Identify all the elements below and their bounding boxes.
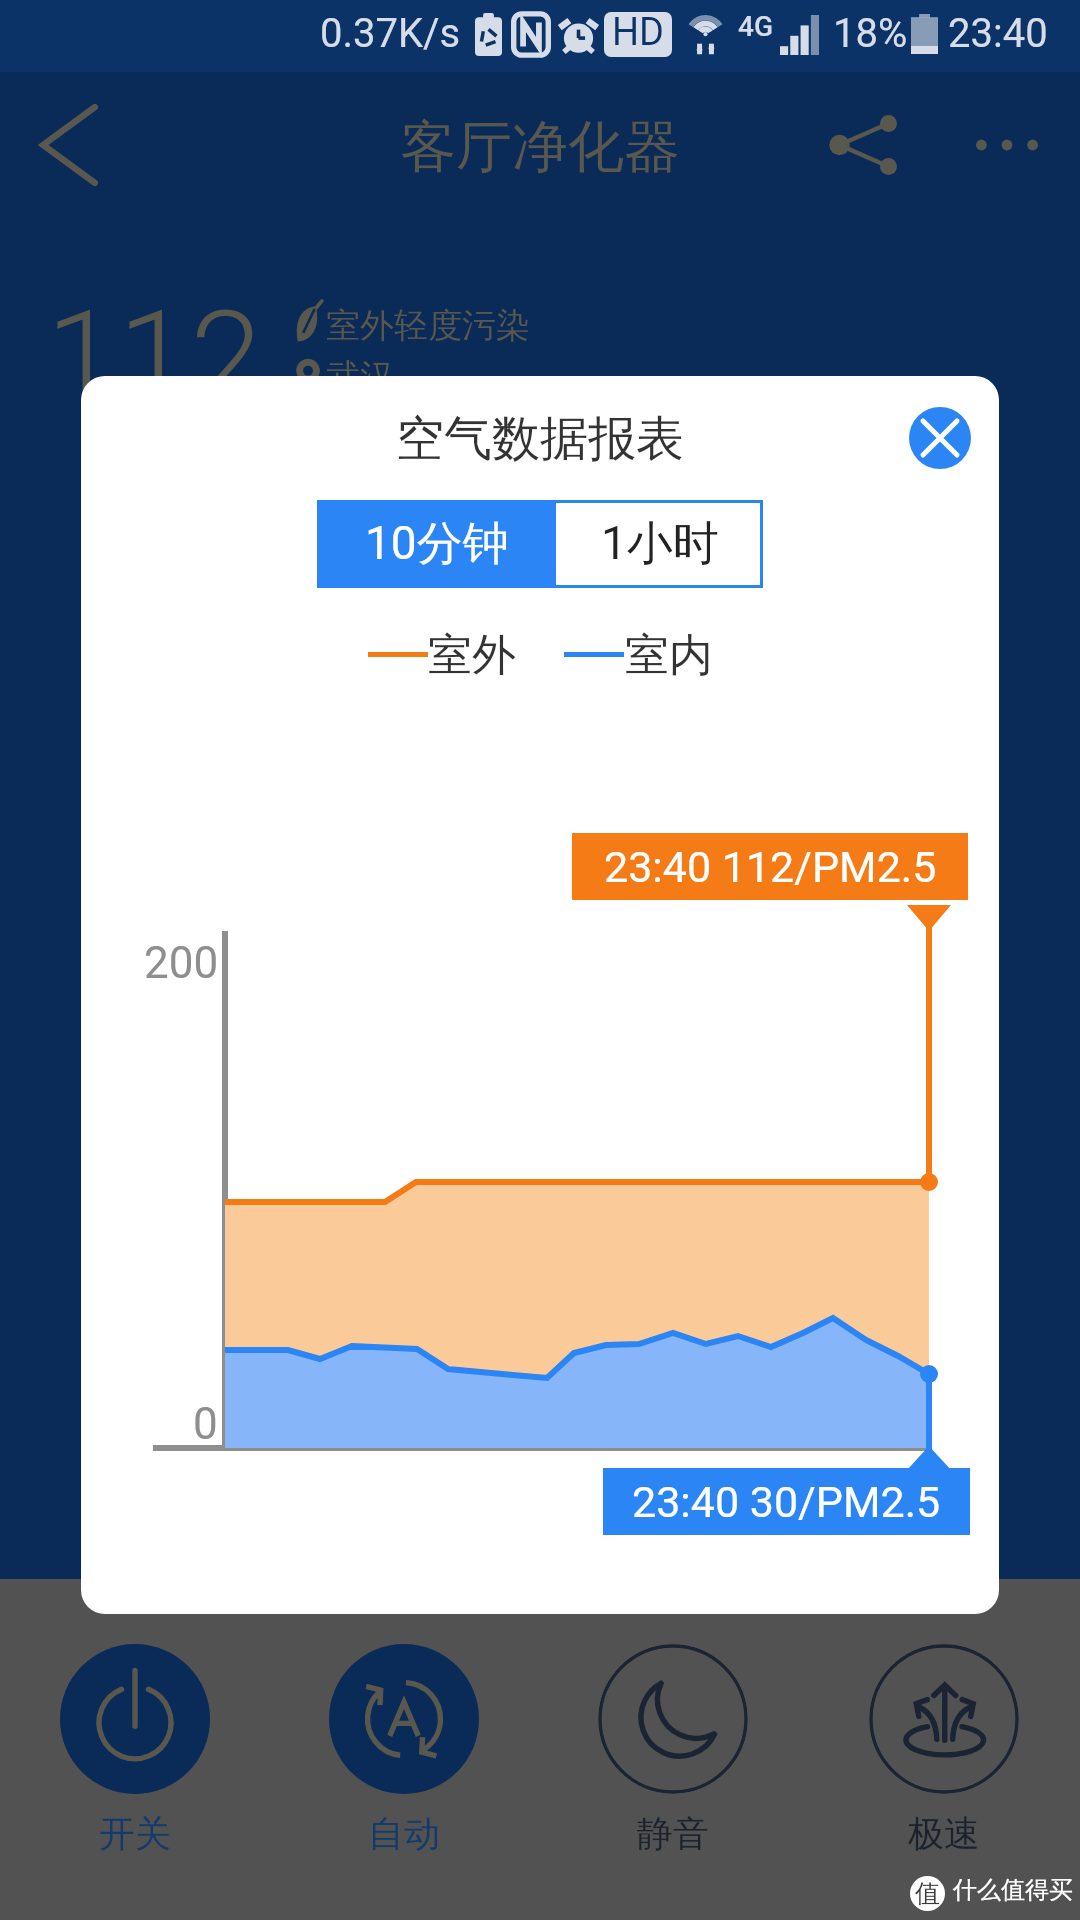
staticText: HD — [612, 12, 665, 55]
button[interactable]: 开关 — [60, 1644, 210, 1856]
staticText: 静音 — [637, 1811, 709, 1856]
staticText: 23:40 — [948, 10, 1048, 57]
staticText: 空气数据报表 — [396, 409, 684, 469]
button[interactable]: Close — [909, 407, 971, 469]
staticText: 值 — [915, 1878, 940, 1909]
staticText: 自动 — [368, 1811, 440, 1856]
button[interactable]: 极速 — [869, 1644, 1019, 1856]
button[interactable]: Back — [6, 80, 132, 210]
staticText: 4G — [738, 10, 773, 43]
staticText: 200 — [144, 937, 219, 989]
button[interactable]: 1小时 — [556, 500, 763, 588]
staticText: 0 — [193, 1398, 218, 1450]
staticText: 室外轻度污染 — [326, 304, 530, 347]
staticText: 0.37K/s — [320, 10, 461, 57]
staticText: 18% — [833, 10, 908, 57]
staticText: 10分钟 — [365, 515, 509, 573]
button[interactable]: More options — [947, 85, 1067, 205]
staticText: 室内 — [625, 628, 713, 683]
staticText: 室外 — [428, 628, 516, 683]
staticText: 客厅净化器 — [400, 112, 680, 183]
button[interactable]: 自动 — [329, 1644, 479, 1856]
button[interactable]: 10分钟 — [317, 500, 556, 588]
button[interactable]: 静音 — [598, 1644, 748, 1856]
staticText: 23:40 112/PM2.5 — [604, 842, 937, 892]
staticText: 23:40 30/PM2.5 — [632, 1477, 941, 1527]
staticText: 1小时 — [601, 515, 719, 573]
staticText: 什么值得买 — [953, 1875, 1073, 1905]
staticText: 开关 — [99, 1811, 171, 1856]
staticText: 武汉 — [326, 355, 394, 398]
button[interactable]: Share — [804, 85, 924, 205]
staticText: 112 — [46, 282, 263, 434]
staticText: 极速 — [908, 1811, 980, 1856]
